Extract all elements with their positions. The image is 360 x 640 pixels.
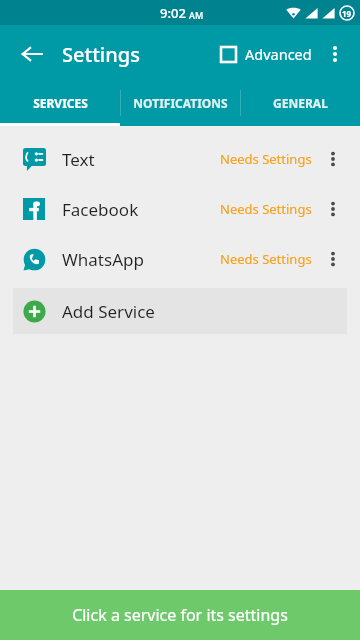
staticText: SERVICES [33, 95, 88, 111]
button[interactable]: SERVICES [0, 83, 120, 123]
staticText: Needs Settings [220, 250, 312, 268]
button[interactable]: Facebook [0, 184, 360, 234]
button[interactable]: More options for Text [312, 138, 354, 180]
staticText: 9:02 [160, 4, 186, 22]
button[interactable]: More options [316, 35, 354, 73]
staticText: GENERAL [273, 95, 328, 111]
button[interactable]: Add Service [13, 288, 347, 334]
staticText: 19 [342, 8, 352, 19]
staticText: Facebook [62, 198, 139, 221]
button[interactable]: NOTIFICATIONS [121, 83, 240, 123]
staticText: Click a service for its settings [72, 604, 288, 626]
button[interactable]: Advanced [216, 38, 316, 70]
button[interactable]: GENERAL [241, 83, 360, 123]
staticText: Advanced [245, 44, 312, 64]
button[interactable]: More options for Facebook [312, 188, 354, 230]
staticText: Text [62, 148, 95, 171]
staticText: Settings [62, 41, 140, 68]
button[interactable]: Text [0, 134, 360, 184]
staticText: Add Service [62, 300, 155, 323]
staticText: Needs Settings [220, 200, 312, 218]
staticText: Needs Settings [220, 150, 312, 168]
staticText: AM [189, 9, 204, 21]
staticText: WhatsApp [62, 248, 144, 271]
staticText: NOTIFICATIONS [133, 95, 228, 111]
button[interactable]: Click a service for its settings [0, 590, 360, 640]
button[interactable]: Back [12, 34, 52, 74]
button[interactable]: WhatsApp [0, 234, 360, 284]
button[interactable]: More options for WhatsApp [312, 238, 354, 280]
